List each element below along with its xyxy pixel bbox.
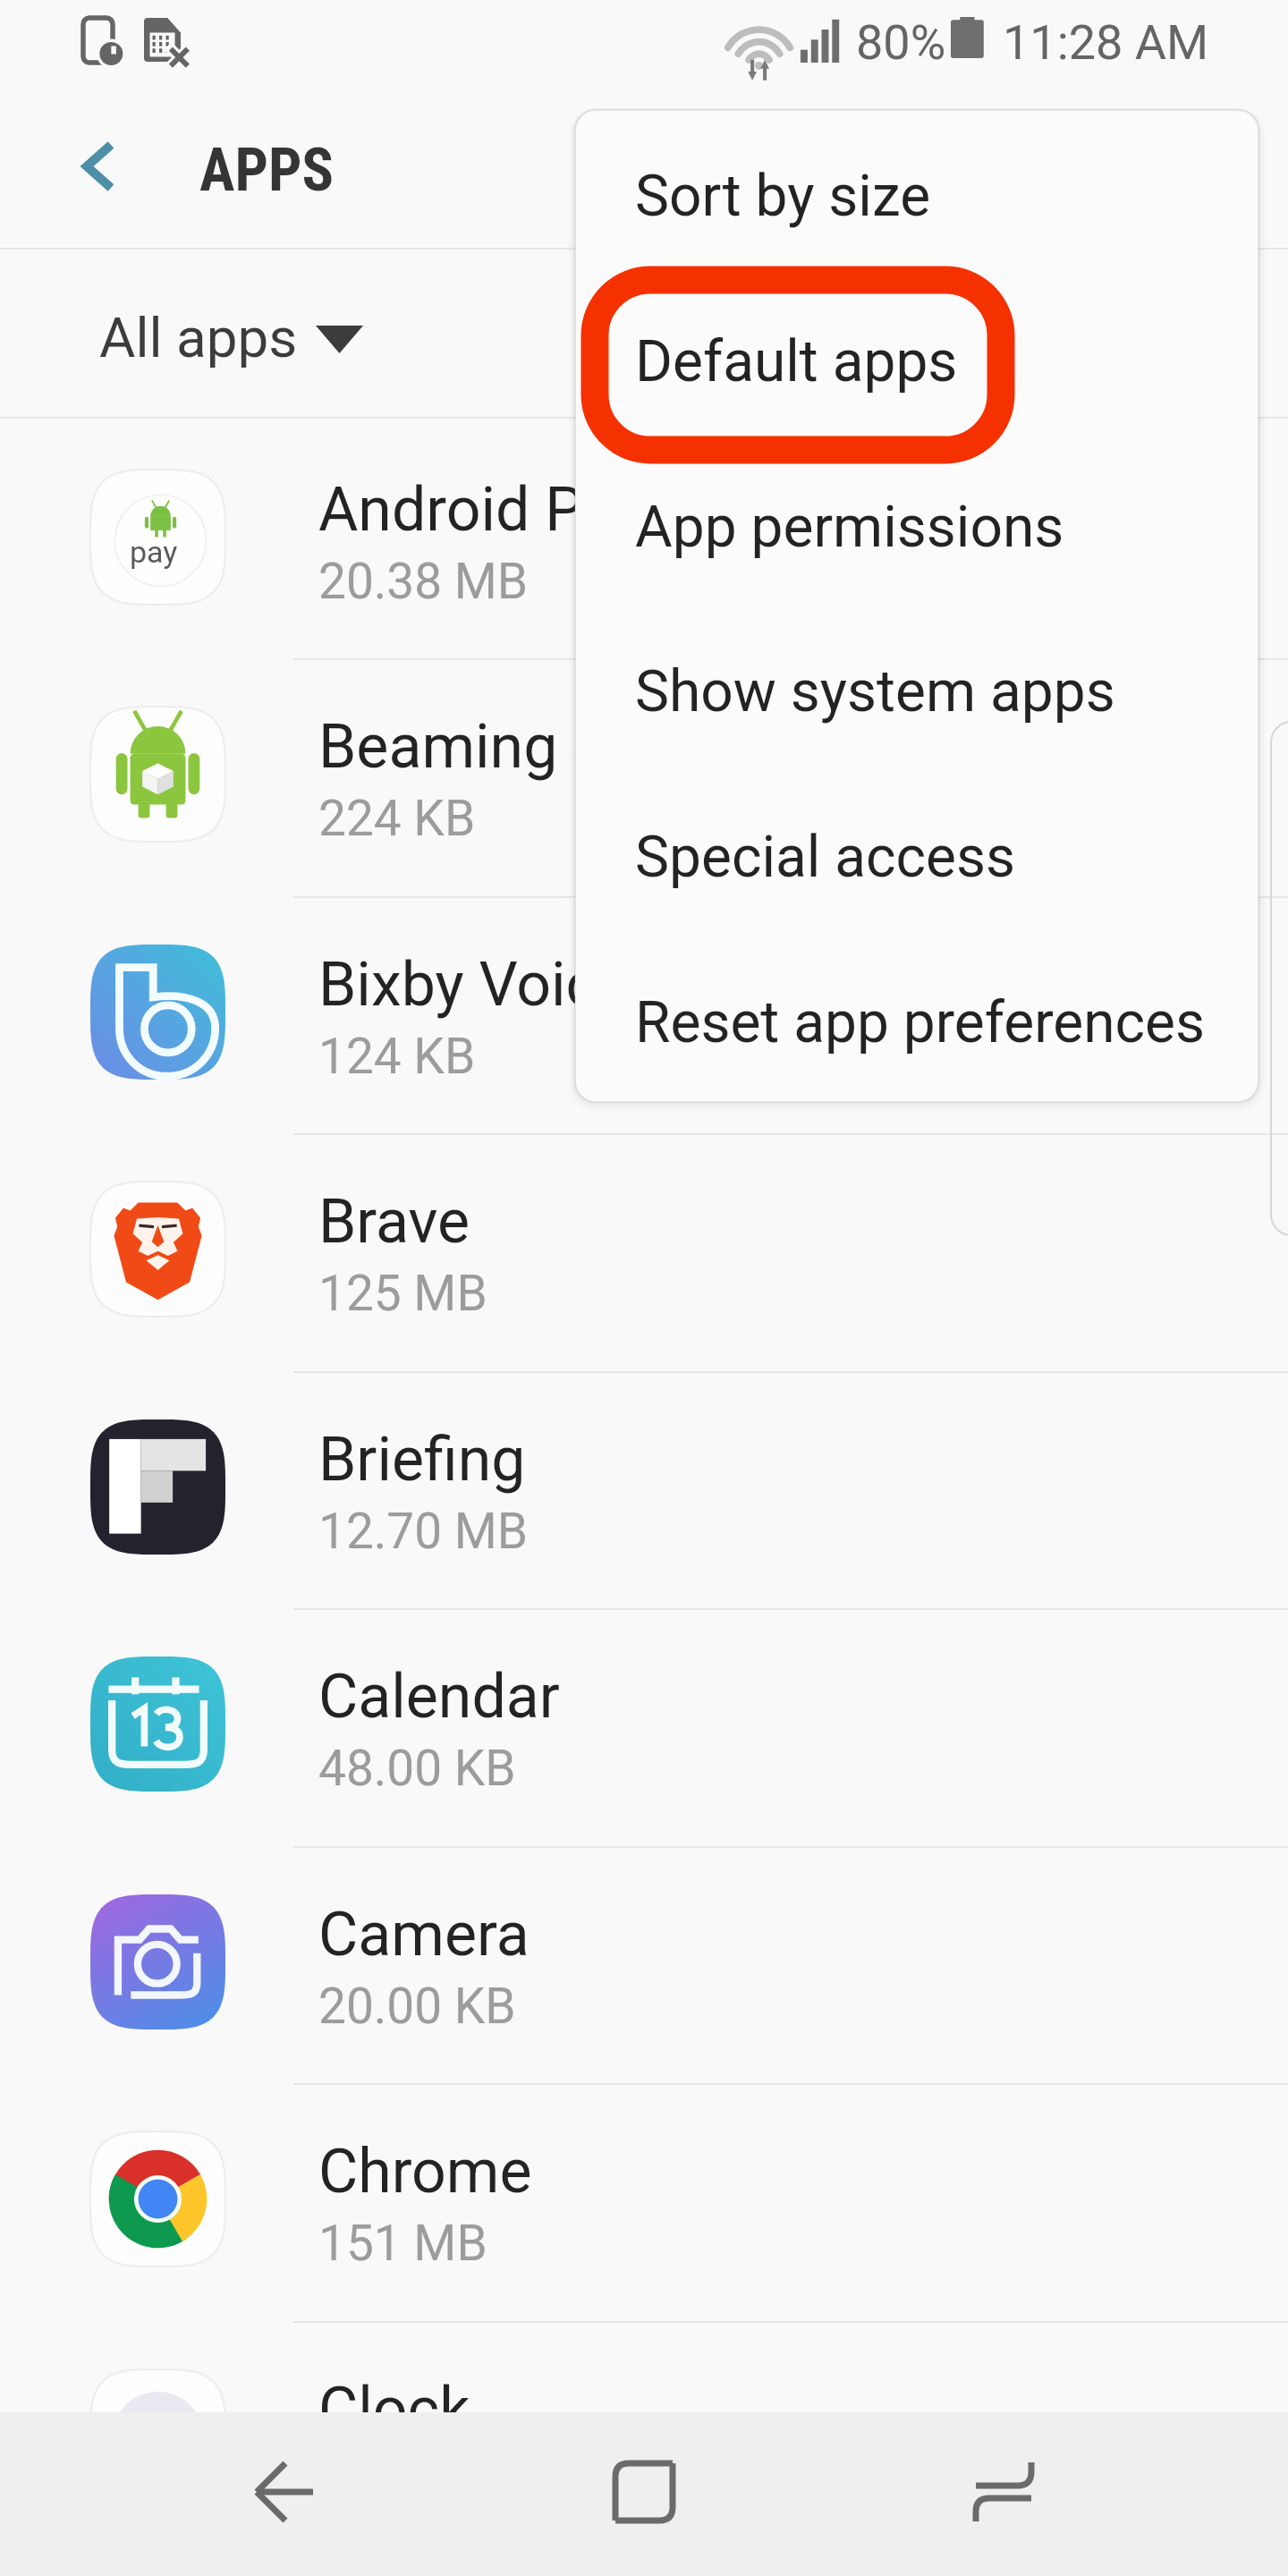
staticText: All apps xyxy=(99,305,298,370)
button[interactable]: Briefing xyxy=(0,1371,1288,1609)
staticText: Default apps xyxy=(635,328,958,395)
staticText: 20.38 MB xyxy=(318,553,529,610)
staticText: Calendar xyxy=(318,1661,560,1733)
button[interactable]: Sort by size xyxy=(575,110,1258,275)
button[interactable]: Brave xyxy=(0,1133,1288,1371)
button[interactable]: Recents xyxy=(894,2412,1111,2576)
button[interactable]: Bixby Voice xyxy=(0,896,1288,1134)
button[interactable]: Camera xyxy=(0,1846,1288,2084)
staticText: 20.00 KB xyxy=(318,1978,516,2035)
staticText: 48.00 KB xyxy=(318,1740,516,1797)
staticText: Clock xyxy=(318,2374,470,2445)
staticText: Brave xyxy=(318,1186,470,1258)
button[interactable]: Special access xyxy=(575,771,1258,936)
button[interactable]: Clock xyxy=(0,2321,1288,2559)
button[interactable]: App permissions xyxy=(575,441,1258,606)
button[interactable]: Navigate up xyxy=(54,125,140,211)
button[interactable]: Reset app preferences xyxy=(575,936,1258,1102)
staticText: Bixby Voice xyxy=(318,949,631,1021)
staticText: pay xyxy=(130,534,178,570)
staticText: APPS xyxy=(199,136,335,205)
staticText: 125 MB xyxy=(318,1265,487,1322)
staticText: Show system apps xyxy=(635,658,1115,725)
staticText: 12.70 MB xyxy=(318,1503,529,1560)
button[interactable]: Home xyxy=(536,2412,752,2576)
staticText: 124 KB xyxy=(318,1028,476,1085)
button[interactable]: Back xyxy=(177,2412,394,2576)
staticText: Reset app preferences xyxy=(635,989,1205,1056)
button[interactable]: Default apps xyxy=(575,275,1258,441)
button[interactable]: All apps xyxy=(0,250,1288,417)
staticText: Sort by size xyxy=(635,163,931,230)
staticText: 11:28 AM xyxy=(1003,14,1209,71)
staticText: Briefing xyxy=(318,1424,526,1496)
button[interactable]: pay xyxy=(0,421,1288,659)
staticText: Chrome xyxy=(318,2136,532,2207)
staticText: Camera xyxy=(318,1899,530,1970)
staticText: 224 KB xyxy=(318,790,476,847)
button[interactable]: Calendar xyxy=(0,1608,1288,1846)
staticText: Beaming Service xyxy=(318,711,771,783)
staticText: 80% xyxy=(856,14,946,71)
button[interactable]: Chrome xyxy=(0,2083,1288,2321)
button[interactable]: Show system apps xyxy=(575,606,1258,771)
staticText: Android Pay xyxy=(318,474,645,546)
button[interactable]: Beaming Service xyxy=(0,658,1288,896)
staticText: 151 MB xyxy=(318,2215,487,2272)
staticText: App permissions xyxy=(635,494,1064,561)
staticText: Special access xyxy=(635,824,1015,891)
